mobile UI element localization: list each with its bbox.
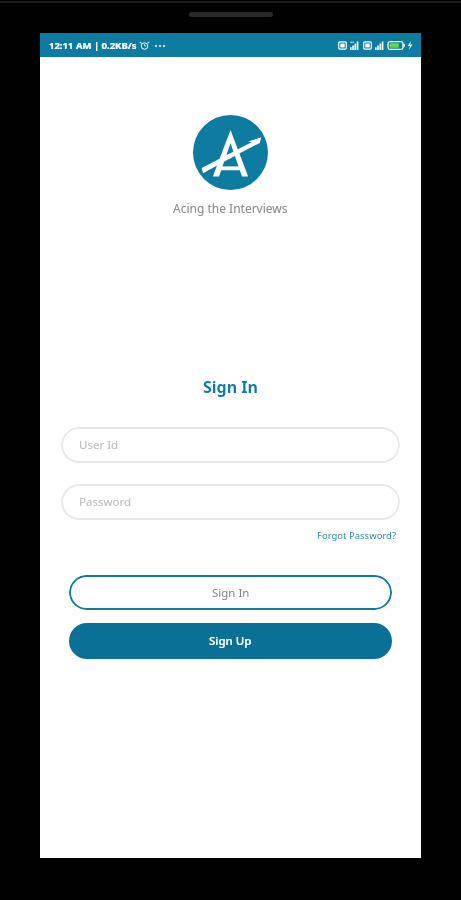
button[interactable]: Forgot Password? — [315, 527, 399, 544]
staticText: Sign In — [203, 376, 258, 398]
button[interactable]: Sign In — [69, 575, 392, 610]
staticText: 12:11 AM | 0.2KB/s — [49, 39, 137, 52]
other: Acing the Interviews logo — [193, 115, 268, 190]
button[interactable]: Password — [61, 484, 400, 520]
staticText: Sign Up — [209, 633, 252, 649]
staticText: Forgot Password? — [317, 529, 397, 542]
button[interactable]: Sign Up — [69, 623, 392, 659]
staticText: Password — [79, 494, 132, 510]
button[interactable]: User Id — [61, 427, 400, 463]
staticText: Sign In — [212, 585, 250, 601]
staticText: Acing the Interviews — [173, 200, 288, 216]
staticText: User Id — [79, 437, 119, 453]
